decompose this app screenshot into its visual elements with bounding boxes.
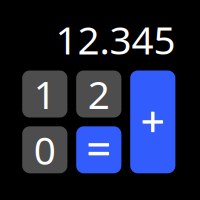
staticText: 0 <box>34 124 56 175</box>
button[interactable]: 1 <box>22 70 67 117</box>
staticText: 12.345 <box>55 14 175 65</box>
button[interactable]: Equals <box>76 126 121 173</box>
button[interactable]: Plus <box>130 70 175 173</box>
staticText: 1 <box>34 68 56 120</box>
staticText: 2 <box>88 68 110 120</box>
button[interactable]: 2 <box>76 70 121 117</box>
button[interactable]: 0 <box>22 126 67 173</box>
